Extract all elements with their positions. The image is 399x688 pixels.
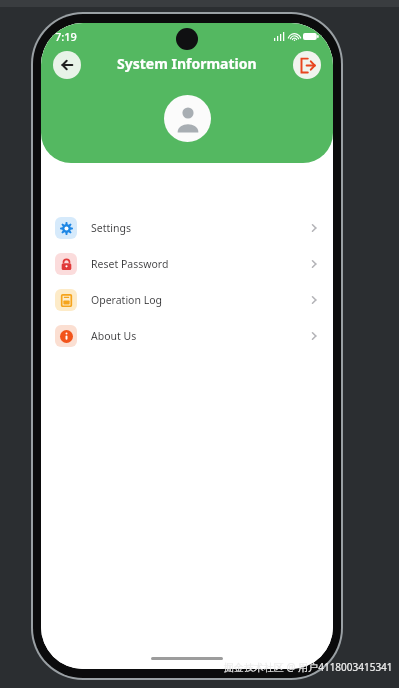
button[interactable]: Operation Log [41, 282, 333, 318]
staticText: Settings [91, 221, 131, 235]
staticText: 7:19 [55, 29, 77, 44]
staticText: About Us [91, 329, 137, 343]
button[interactable]: Log out [293, 51, 321, 79]
staticText: Operation Log [91, 293, 162, 307]
staticText: Reset Password [91, 257, 169, 271]
button[interactable]: About Us [41, 318, 333, 354]
button[interactable]: Back [53, 51, 81, 79]
button[interactable]: Settings [41, 210, 333, 246]
staticText: 掘金技术社区 @ 用户4118003415341 [224, 660, 393, 674]
staticText: System Information [117, 54, 257, 73]
button[interactable]: Profile photo [164, 95, 211, 142]
button[interactable]: Reset Password [41, 246, 333, 282]
